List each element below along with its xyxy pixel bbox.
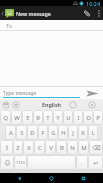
button[interactable]: ☺ bbox=[0, 155, 14, 170]
button[interactable]: To bbox=[0, 20, 103, 30]
staticText: English bbox=[42, 101, 62, 108]
button[interactable]: S bbox=[16, 125, 27, 140]
button[interactable]: O bbox=[83, 110, 93, 125]
staticText: B bbox=[60, 144, 64, 152]
button[interactable]: Voice input bbox=[12, 101, 20, 109]
staticText: Y bbox=[56, 114, 60, 122]
button[interactable]: F bbox=[38, 125, 48, 140]
button[interactable]: Attach bbox=[80, 6, 94, 20]
button[interactable]: H bbox=[58, 125, 68, 140]
button[interactable]: Home bbox=[35, 173, 67, 183]
button[interactable]: ⇧ bbox=[0, 140, 13, 155]
staticText: P bbox=[96, 114, 100, 122]
staticText: G bbox=[51, 129, 56, 137]
button[interactable]: U bbox=[63, 110, 73, 125]
staticText: ☺ bbox=[4, 159, 11, 166]
button[interactable]: More options bbox=[94, 6, 103, 20]
staticText: L bbox=[91, 129, 95, 137]
staticText: M bbox=[81, 144, 87, 152]
button[interactable]: A bbox=[5, 125, 16, 140]
staticText: K bbox=[81, 129, 85, 137]
button[interactable]: Back bbox=[4, 173, 35, 183]
button[interactable]: Type message bbox=[3, 89, 80, 98]
button[interactable]: Y bbox=[53, 110, 63, 125]
button[interactable]: Q bbox=[0, 110, 11, 125]
button[interactable]: Search bbox=[69, 101, 77, 109]
staticText: J bbox=[72, 129, 74, 137]
button[interactable]: Emoji bbox=[2, 101, 10, 109]
staticText: To bbox=[6, 22, 13, 29]
staticText: E bbox=[26, 114, 30, 122]
staticText: Z bbox=[16, 144, 20, 152]
staticText: 10:24 bbox=[86, 0, 101, 6]
button[interactable]: E bbox=[22, 110, 33, 125]
button[interactable]: M bbox=[78, 140, 89, 155]
button[interactable]: R bbox=[33, 110, 43, 125]
staticText: O bbox=[86, 114, 91, 122]
staticText: ⌫ bbox=[92, 144, 101, 151]
staticText: I bbox=[77, 114, 80, 122]
button[interactable]: L bbox=[88, 125, 98, 140]
staticText: D bbox=[30, 129, 35, 137]
staticText: ↵ bbox=[93, 159, 99, 166]
button[interactable]: G bbox=[48, 125, 58, 140]
button[interactable]: ⌫ bbox=[89, 140, 103, 155]
staticText: R bbox=[36, 114, 40, 122]
button[interactable] bbox=[0, 6, 16, 20]
button[interactable]: K bbox=[78, 125, 88, 140]
button[interactable]: Z bbox=[13, 140, 23, 155]
button[interactable]: I bbox=[73, 110, 83, 125]
button[interactable]: J bbox=[68, 125, 78, 140]
staticText: Q bbox=[3, 114, 8, 122]
button[interactable]: B bbox=[56, 140, 67, 155]
staticText: U bbox=[66, 114, 71, 122]
button[interactable]: Settings bbox=[88, 101, 96, 109]
button[interactable]: ?123 bbox=[14, 155, 27, 170]
staticText: Type message bbox=[3, 90, 37, 97]
button[interactable]: X bbox=[23, 140, 34, 155]
staticText: F bbox=[41, 129, 45, 137]
button[interactable]: V bbox=[45, 140, 56, 155]
staticText: ⇧ bbox=[4, 144, 10, 151]
button[interactable]: P bbox=[93, 110, 103, 125]
button[interactable] bbox=[27, 155, 76, 170]
staticText: C bbox=[38, 144, 42, 152]
button[interactable]: Send bbox=[81, 87, 103, 99]
staticText: N bbox=[70, 144, 75, 152]
button[interactable]: . bbox=[76, 155, 88, 170]
button[interactable]: Recent apps bbox=[67, 173, 99, 183]
staticText: H bbox=[61, 129, 66, 137]
staticText: S bbox=[20, 129, 24, 137]
button[interactable]: ↵ bbox=[88, 155, 103, 170]
staticText: A bbox=[9, 129, 13, 137]
staticText: New message bbox=[16, 10, 51, 17]
button[interactable]: T bbox=[43, 110, 53, 125]
button[interactable]: C bbox=[34, 140, 45, 155]
staticText: X bbox=[27, 144, 31, 152]
staticText: ?123 bbox=[16, 160, 25, 165]
button[interactable]: D bbox=[27, 125, 38, 140]
button[interactable]: W bbox=[11, 110, 22, 125]
button[interactable]: N bbox=[67, 140, 78, 155]
staticText: W bbox=[14, 114, 20, 122]
staticText: T bbox=[46, 114, 50, 122]
staticText: V bbox=[49, 144, 53, 152]
staticText: . bbox=[81, 159, 83, 167]
